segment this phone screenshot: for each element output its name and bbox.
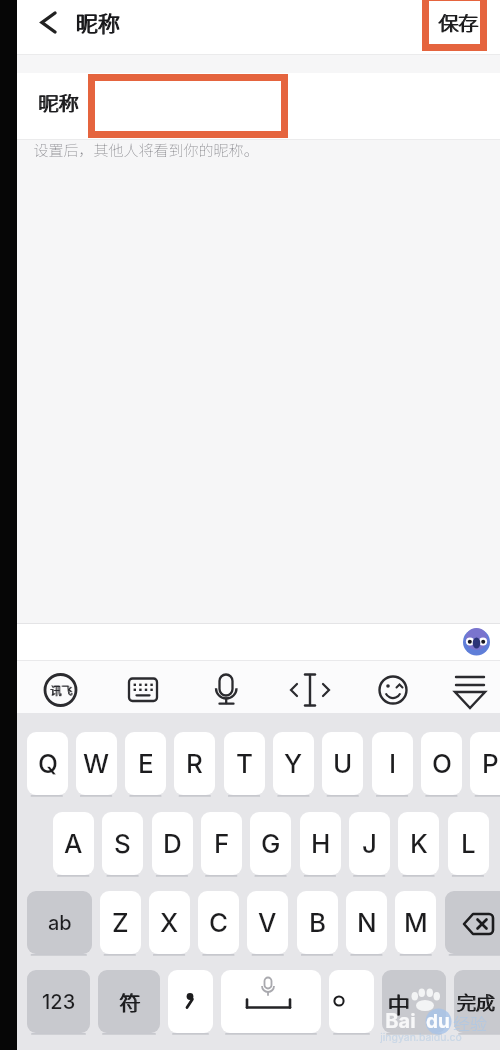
staticText: 讯飞 xyxy=(51,682,73,698)
button[interactable]: 保存 xyxy=(430,5,485,39)
button[interactable]: ab xyxy=(27,891,92,954)
button[interactable] xyxy=(454,970,500,1033)
staticText: S xyxy=(114,828,131,859)
staticText: J xyxy=(362,828,377,859)
button[interactable]: L xyxy=(448,812,489,875)
button[interactable]: B xyxy=(297,891,338,954)
staticText: 保存 xyxy=(438,8,478,37)
staticText: 完成 xyxy=(457,988,496,1016)
button[interactable] xyxy=(382,970,446,1033)
staticText: 昵称 xyxy=(38,88,78,117)
button[interactable] xyxy=(371,668,415,712)
button[interactable]: 123 xyxy=(27,970,90,1033)
button[interactable] xyxy=(288,668,332,712)
staticText: ab xyxy=(48,911,72,935)
button[interactable]: X xyxy=(149,891,190,954)
button[interactable] xyxy=(38,668,82,712)
staticText: K xyxy=(410,828,428,859)
staticText: Q xyxy=(38,748,58,779)
staticText: du xyxy=(426,1010,450,1033)
staticText: 昵称 xyxy=(39,88,79,117)
staticText: Bai xyxy=(385,1009,416,1033)
staticText: X xyxy=(160,907,179,938)
button[interactable]: O xyxy=(421,732,462,795)
button[interactable] xyxy=(221,970,321,1033)
staticText: B xyxy=(309,907,327,938)
staticText: V xyxy=(258,907,277,938)
button[interactable]: T xyxy=(224,732,265,795)
staticText: U xyxy=(333,748,353,779)
button[interactable] xyxy=(118,668,162,712)
staticText: I xyxy=(389,748,397,779)
button[interactable]: U xyxy=(322,732,363,795)
button[interactable]: F xyxy=(201,812,242,875)
staticText: G xyxy=(261,828,281,859)
staticText: 中 xyxy=(387,987,410,1019)
staticText: 昵称 xyxy=(38,88,78,117)
button[interactable]: M xyxy=(395,891,436,954)
staticText: 完成 xyxy=(456,988,495,1016)
staticText: 讯飞 xyxy=(50,682,72,698)
staticText: 昵称 xyxy=(75,6,120,38)
button[interactable]: E xyxy=(125,732,166,795)
button[interactable] xyxy=(168,970,213,1033)
button[interactable] xyxy=(88,74,288,138)
button[interactable]: H xyxy=(300,812,341,875)
button[interactable]: Z xyxy=(100,891,141,954)
staticText: Y xyxy=(284,748,303,779)
button[interactable]: G xyxy=(250,812,291,875)
staticText: T xyxy=(236,748,253,779)
staticText: D xyxy=(163,828,182,859)
staticText: 昵称 xyxy=(76,6,121,38)
button[interactable] xyxy=(445,891,500,954)
button[interactable]: W xyxy=(76,732,117,795)
button[interactable] xyxy=(448,668,492,712)
button[interactable]: A xyxy=(53,812,94,875)
button[interactable]: P xyxy=(470,732,500,795)
staticText: R xyxy=(186,748,203,779)
staticText: 经验 xyxy=(453,1010,487,1034)
staticText: H xyxy=(311,828,331,859)
staticText: 讯飞 xyxy=(50,682,72,698)
button[interactable]: J xyxy=(349,812,390,875)
staticText: 保存 xyxy=(438,8,478,37)
staticText: L xyxy=(461,828,476,859)
button[interactable] xyxy=(462,628,491,657)
staticText: 设置后，其他人将看到你的昵称。 xyxy=(33,139,259,161)
button[interactable] xyxy=(30,8,62,40)
staticText: 中 xyxy=(387,987,410,1019)
staticText: 保存 xyxy=(439,8,479,37)
staticText: jingyan.baidu.com xyxy=(378,1031,464,1044)
button[interactable]: D xyxy=(152,812,193,875)
staticText: 符 xyxy=(120,987,141,1017)
button[interactable]: R xyxy=(174,732,215,795)
staticText: 123 xyxy=(42,990,76,1014)
staticText: P xyxy=(482,748,499,779)
button[interactable]: K xyxy=(398,812,439,875)
staticText: Z xyxy=(112,907,129,938)
button[interactable]: N xyxy=(346,891,387,954)
button[interactable] xyxy=(329,970,374,1033)
staticText: M xyxy=(404,907,428,938)
staticText: A xyxy=(64,828,83,859)
button[interactable]: S xyxy=(102,812,143,875)
button[interactable] xyxy=(98,970,160,1033)
staticText: 中 xyxy=(388,987,411,1019)
staticText: 昵称 xyxy=(75,6,120,38)
button[interactable]: C xyxy=(198,891,239,954)
button[interactable]: Y xyxy=(273,732,314,795)
staticText: O xyxy=(432,748,452,779)
button[interactable]: V xyxy=(247,891,288,954)
staticText: 完成 xyxy=(456,988,495,1016)
button[interactable] xyxy=(203,668,247,712)
staticText: E xyxy=(138,748,154,779)
staticText: 符 xyxy=(119,987,140,1017)
button[interactable]: Q xyxy=(27,732,68,795)
staticText: N xyxy=(357,907,377,938)
staticText: 符 xyxy=(119,987,140,1017)
staticText: C xyxy=(209,907,229,938)
staticText: F xyxy=(214,828,230,859)
staticText: W xyxy=(83,748,110,779)
button[interactable]: I xyxy=(372,732,413,795)
